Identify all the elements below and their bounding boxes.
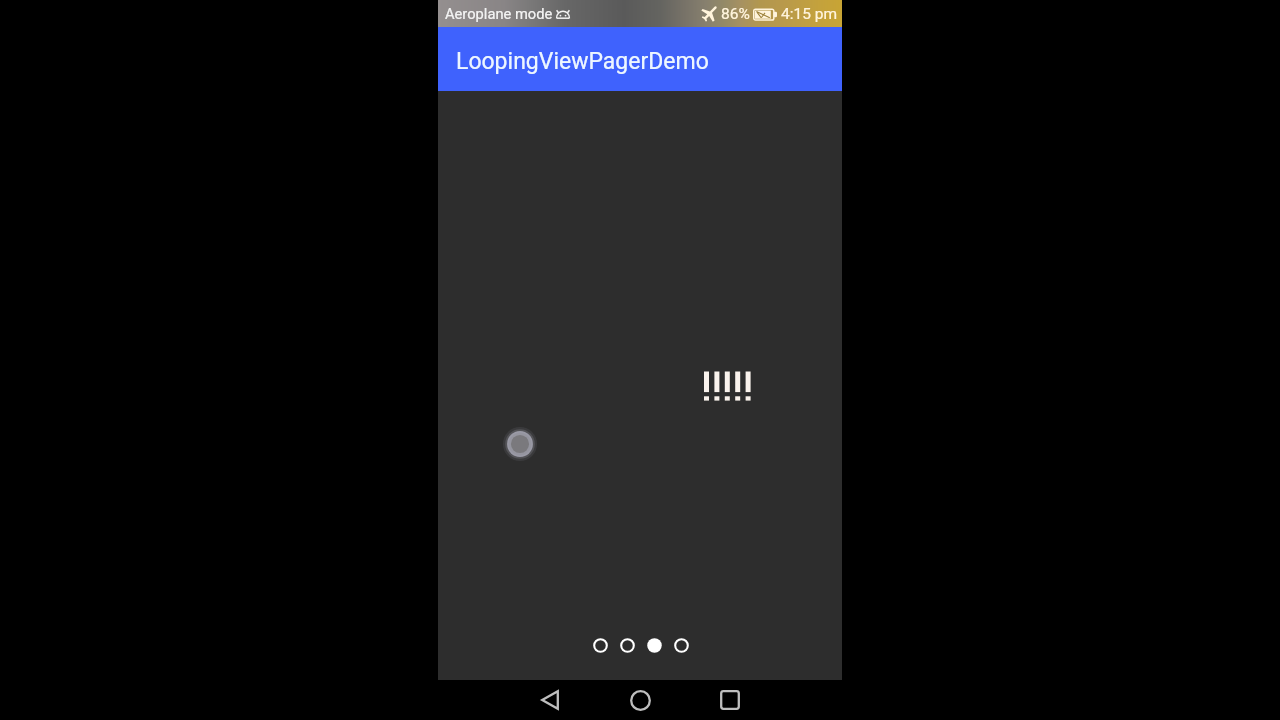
button[interactable]: Go to page xyxy=(620,638,635,653)
button[interactable]: Back xyxy=(526,680,574,720)
button[interactable]: Home xyxy=(616,680,664,720)
staticText: 86% xyxy=(721,5,750,23)
button[interactable]: Recent apps xyxy=(706,680,754,720)
button[interactable]: !!!!! xyxy=(704,371,750,401)
staticText: 4:15 pm xyxy=(781,5,838,23)
button[interactable]: Go to page xyxy=(593,638,608,653)
button[interactable]: Current page xyxy=(647,638,662,653)
staticText: LoopingViewPagerDemo xyxy=(456,48,709,75)
button[interactable]: Go to page xyxy=(674,638,689,653)
staticText: Aeroplane mode xyxy=(445,5,553,22)
